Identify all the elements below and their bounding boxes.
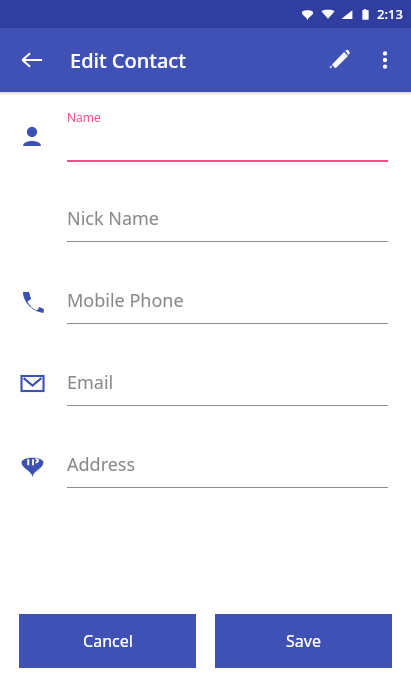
staticText: Cancel bbox=[83, 630, 133, 652]
button[interactable]: Back bbox=[8, 36, 56, 84]
staticText: 2:13 bbox=[377, 5, 403, 23]
button[interactable]: Mobile Phone bbox=[67, 279, 388, 321]
staticText: Address bbox=[67, 452, 136, 477]
staticText: Save bbox=[286, 630, 321, 652]
button[interactable]: More options bbox=[363, 38, 407, 82]
button[interactable]: Save bbox=[215, 614, 392, 668]
staticText: Email bbox=[67, 370, 114, 395]
button[interactable]: Address bbox=[67, 443, 388, 485]
button[interactable]: Cancel bbox=[19, 614, 196, 668]
staticText: Mobile Phone bbox=[67, 288, 184, 313]
staticText: Nick Name bbox=[67, 206, 160, 231]
button[interactable]: Nick Name bbox=[67, 197, 388, 239]
button[interactable]: Email bbox=[67, 361, 388, 403]
staticText: Name bbox=[67, 109, 101, 125]
button[interactable]: Edit bbox=[315, 36, 363, 84]
staticText: Edit Contact bbox=[70, 47, 186, 74]
